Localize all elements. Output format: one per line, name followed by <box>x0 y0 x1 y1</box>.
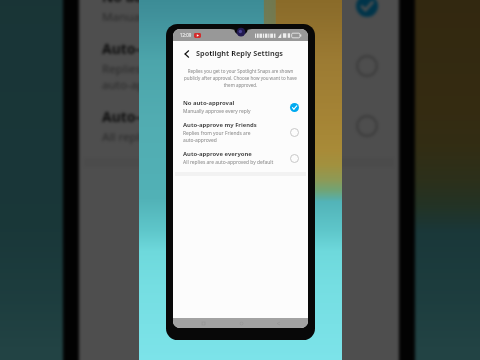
staticText: Manually approve every reply <box>102 9 263 25</box>
button[interactable]: Auto-approve my Friends <box>173 118 308 147</box>
button[interactable]: No auto-approval <box>173 96 308 118</box>
staticText: Replies you get to your Spotlight Snaps … <box>184 68 297 88</box>
staticText: All replies are auto-approved by default <box>102 129 317 145</box>
staticText: Manually approve every reply <box>183 108 251 115</box>
staticText: Auto-approve everyone <box>183 150 252 158</box>
staticText: Replies from your Friends are auto-appro… <box>102 61 263 93</box>
staticText: Auto-approve my Friends <box>183 121 257 129</box>
staticText: Replies from your Friends are auto-appro… <box>183 130 251 144</box>
staticText: No auto-approval <box>102 0 224 6</box>
button[interactable]: Auto-approve everyone <box>173 147 308 169</box>
staticText: Spotlight Reply Settings <box>196 48 284 58</box>
staticText: Auto-approve my Friends <box>102 39 277 58</box>
button[interactable]: Auto-approve my Friends <box>79 32 399 100</box>
staticText: 12:09 <box>180 32 192 38</box>
button[interactable]: No auto-approval <box>79 0 399 32</box>
button[interactable]: Back <box>181 48 192 59</box>
staticText: Auto-approve everyone <box>102 107 266 126</box>
staticText: All replies are auto-approved by default <box>183 159 274 166</box>
button[interactable]: Auto-approve everyone <box>79 100 399 152</box>
staticText: No auto-approval <box>183 99 235 107</box>
